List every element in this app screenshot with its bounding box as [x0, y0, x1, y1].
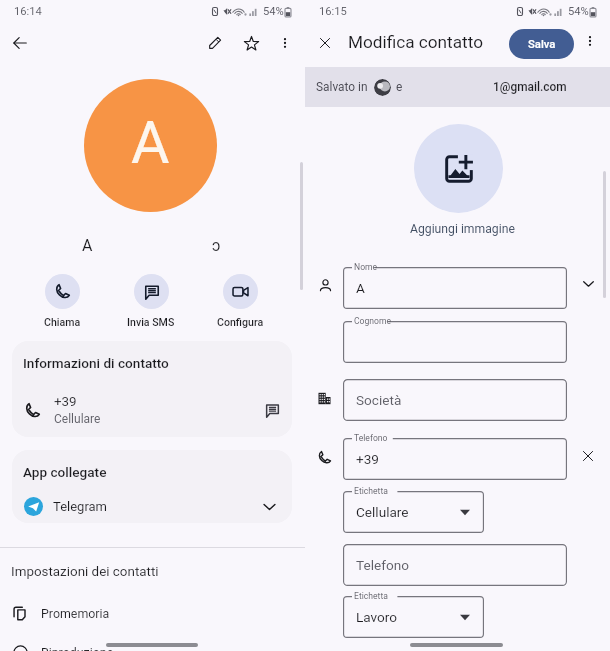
staticText: A [82, 236, 93, 255]
staticText: Informazioni di contatto [23, 355, 169, 371]
staticText: A [356, 280, 365, 296]
staticText: Società [356, 392, 402, 408]
button[interactable]: Close [310, 28, 340, 58]
staticText: Etichetta [354, 591, 388, 601]
button[interactable]: Società [343, 379, 567, 421]
button[interactable]: Salva [509, 29, 574, 59]
staticText: Cognome [354, 316, 392, 326]
staticText: Telegram [53, 499, 107, 514]
staticText: Impostazioni dei contatti [11, 564, 159, 580]
staticText: Salva [528, 38, 556, 51]
button[interactable]: Riproduzione [0, 638, 305, 651]
staticText: 16:14 [14, 5, 42, 18]
staticText: Modifica contatto [348, 32, 483, 52]
staticText: Invia SMS [127, 316, 175, 328]
button[interactable]: Etichetta [343, 491, 484, 533]
staticText: +39 [54, 394, 77, 410]
staticText: Salvato in [316, 80, 368, 94]
button[interactable]: +39 [12, 383, 292, 437]
button[interactable]: Telegram [12, 490, 292, 523]
staticText: Cellulare [54, 412, 101, 426]
button[interactable]: Send message [258, 396, 286, 424]
button[interactable]: Back [5, 28, 35, 58]
staticText: Chiama [44, 316, 81, 328]
staticText: Riproduzione [41, 645, 114, 651]
button[interactable]: Add image [414, 124, 503, 213]
button[interactable]: Remove phone [574, 442, 601, 469]
button[interactable]: Cognome [343, 321, 567, 363]
button[interactable]: More options [270, 28, 300, 58]
staticText: +39 [356, 451, 379, 467]
button[interactable]: Nome [343, 267, 567, 309]
staticText: 16:15 [319, 5, 347, 18]
button[interactable]: Telefono [343, 438, 567, 480]
staticText: 54% [568, 5, 589, 18]
button[interactable]: Salvato in [305, 67, 610, 107]
staticText: ɔ [212, 236, 221, 255]
button[interactable]: Contact photo [84, 79, 217, 212]
staticText: 54% [263, 5, 284, 18]
staticText: Telefono [356, 557, 409, 573]
button[interactable]: Add to favourites [236, 28, 266, 58]
button[interactable]: Promemoria [0, 599, 305, 627]
staticText: 1@gmail.com [493, 80, 567, 94]
staticText: Nome [354, 262, 378, 272]
button[interactable]: Configura [212, 274, 268, 328]
staticText: App collegate [23, 464, 107, 480]
staticText: Etichetta [354, 486, 388, 496]
button[interactable]: Edit contact [200, 28, 230, 58]
staticText: Telefono [354, 433, 388, 443]
button[interactable]: Expand name [575, 270, 602, 297]
staticText: Promemoria [41, 606, 110, 621]
button[interactable]: Chiama [40, 274, 85, 328]
staticText: Configura [217, 316, 264, 328]
staticText: Cellulare [356, 504, 409, 520]
staticText: A [131, 108, 170, 177]
button[interactable]: Invia SMS [123, 274, 179, 328]
staticText: e [396, 80, 403, 94]
staticText: Lavoro [356, 609, 398, 625]
staticText: Aggiungi immagine [410, 222, 515, 236]
button[interactable]: Etichetta [343, 596, 484, 638]
button[interactable]: Telefono [343, 544, 567, 586]
button[interactable]: More options [577, 28, 603, 54]
